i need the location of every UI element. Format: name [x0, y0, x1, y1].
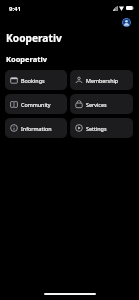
button[interactable]: Services: [70, 94, 133, 114]
staticText: Kooperativ: [6, 54, 48, 64]
staticText: Kooperativ: [6, 31, 62, 45]
staticText: Membership: [86, 77, 119, 84]
button[interactable]: Bookings: [5, 70, 67, 90]
button[interactable]: Community: [5, 94, 67, 114]
staticText: 9:41: [9, 5, 21, 13]
staticText: Information: [21, 125, 52, 132]
button[interactable]: Profile: [122, 18, 131, 27]
button[interactable]: Information: [5, 118, 67, 138]
staticText: Services: [86, 101, 107, 108]
button[interactable]: Settings: [70, 118, 133, 138]
staticText: Community: [21, 101, 51, 108]
staticText: Settings: [86, 125, 107, 132]
staticText: Bookings: [21, 77, 45, 84]
button[interactable]: Membership: [70, 70, 133, 90]
